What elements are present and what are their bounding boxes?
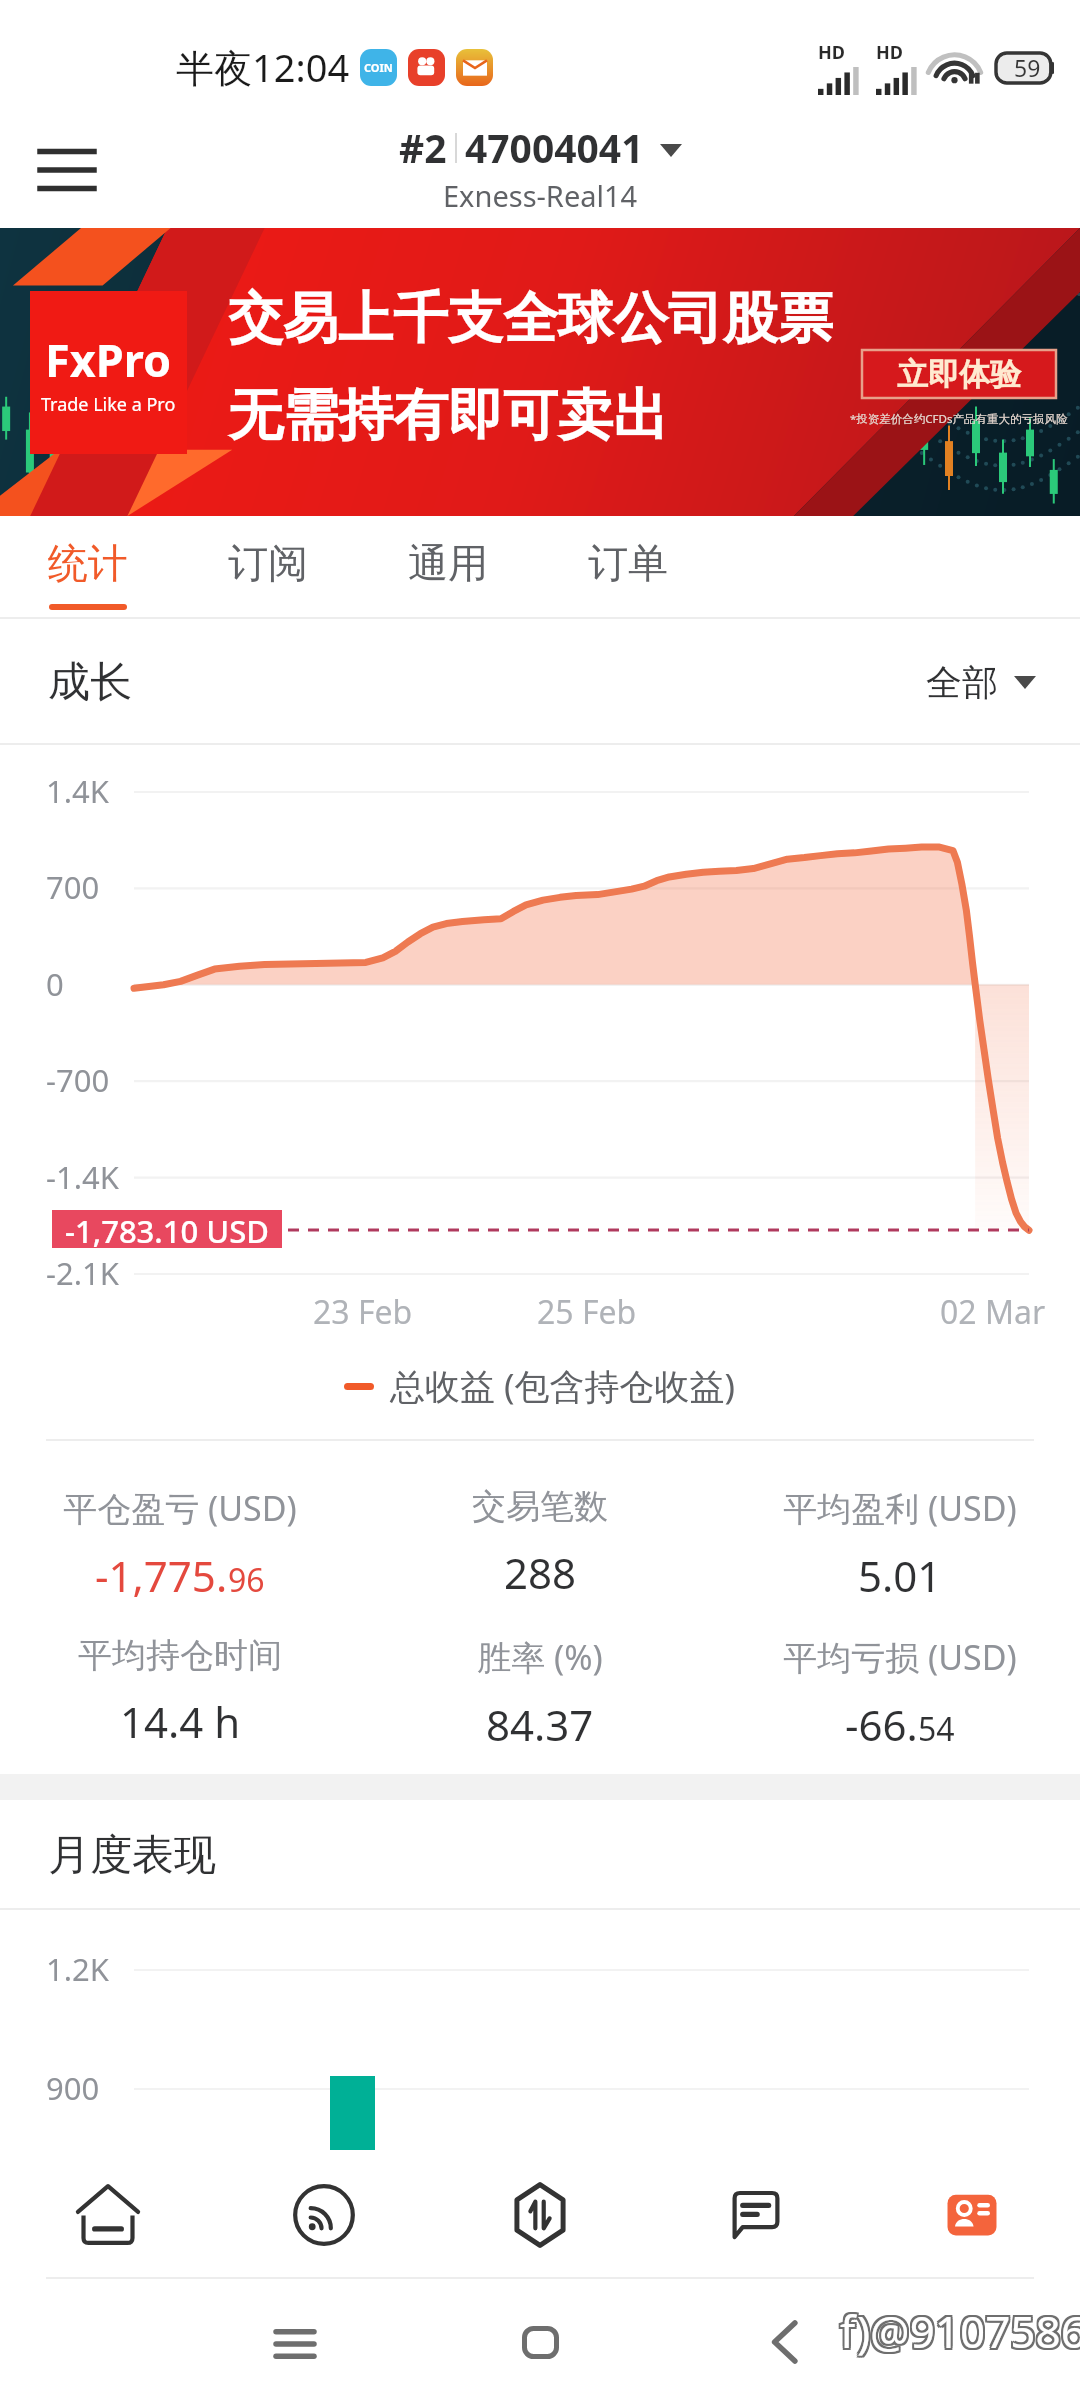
staticText: 25 Feb — [537, 1290, 637, 1334]
button[interactable]: 立即体验 — [862, 350, 1056, 398]
button[interactable]: Trade — [432, 2150, 648, 2279]
staticText: *投资差价合约CFDs产品有重大的亏损风险 — [850, 411, 1068, 427]
button[interactable]: FxPro advertisement banner — [0, 228, 1080, 516]
button[interactable]: 订阅 — [228, 516, 408, 619]
staticText: HD — [876, 40, 903, 65]
staticText: 总收益 (包含持仓收益) — [390, 1362, 736, 1410]
button[interactable]: Feed — [216, 2150, 432, 2279]
staticText: f)@9107586 — [838, 2301, 1080, 2361]
staticText: f)@9107586 — [842, 2301, 1080, 2361]
staticText: 59 — [1014, 52, 1041, 83]
staticText: f)@9107586 — [840, 2303, 1080, 2363]
staticText: 1.4K — [46, 770, 109, 812]
staticText: #2 — [399, 121, 447, 174]
button[interactable]: Home — [0, 2150, 216, 2279]
staticText: 无需持有即可卖出 — [228, 381, 668, 450]
staticText: 47004041 — [465, 121, 644, 174]
staticText: -66. — [845, 1696, 918, 1753]
staticText: Trade Like a Pro — [41, 392, 176, 417]
staticText: 统计 — [48, 538, 128, 588]
staticText: 月度表现 — [48, 1829, 216, 1882]
button[interactable]: Chat — [648, 2150, 864, 2279]
staticText: -1.4K — [46, 1156, 119, 1198]
button[interactable]: Back — [750, 2307, 820, 2377]
staticText: -1,783.10 USD — [65, 1210, 269, 1248]
staticText: 半夜12:04 — [176, 41, 350, 93]
staticText: 23 Feb — [313, 1290, 413, 1334]
staticText: 0 — [46, 963, 64, 1005]
staticText: f)@9107586 — [842, 2299, 1080, 2359]
staticText: 订阅 — [228, 538, 308, 588]
staticText: 1.2K — [46, 1948, 109, 1990]
staticText: f)@9107586 — [838, 2299, 1080, 2359]
staticText: 288 — [504, 1544, 577, 1601]
staticText: 900 — [46, 2067, 100, 2109]
staticText: f)@9107586 — [840, 2301, 1080, 2361]
staticText: HD — [818, 40, 845, 65]
staticText: 平均盈利 (USD) — [783, 1485, 1017, 1531]
staticText: f)@9107586 — [842, 2303, 1080, 2363]
button[interactable]: 订单 — [588, 516, 768, 619]
button[interactable]: Profile — [864, 2150, 1080, 2279]
button[interactable]: Menu — [26, 129, 108, 211]
staticText: -1,775. — [95, 1547, 228, 1604]
staticText: 02 Mar — [940, 1290, 1046, 1334]
staticText: 成长 — [48, 656, 132, 709]
staticText: 交易笔数 — [472, 1485, 608, 1528]
staticText: 14.4 h — [120, 1693, 241, 1750]
staticText: 胜率 (%) — [477, 1634, 603, 1680]
staticText: f)@9107586 — [840, 2299, 1080, 2359]
staticText: 96 — [228, 1558, 265, 1602]
staticText: -700 — [46, 1059, 110, 1101]
staticText: FxPro — [45, 329, 172, 390]
staticText: 订单 — [588, 538, 668, 588]
button[interactable]: 全部 — [926, 660, 1036, 705]
staticText: 全部 — [926, 660, 998, 705]
staticText: -2.1K — [46, 1252, 119, 1294]
button[interactable]: Home — [505, 2307, 575, 2377]
staticText: 54 — [918, 1707, 955, 1751]
staticText: f)@9107586 — [840, 2301, 1080, 2361]
staticText: 5.01 — [858, 1547, 942, 1604]
staticText: 立即体验 — [897, 355, 1021, 394]
staticText: 平均持仓时间 — [78, 1634, 282, 1677]
staticText: 700 — [46, 866, 100, 908]
button[interactable]: Recents — [260, 2309, 330, 2379]
staticText: 84.37 — [486, 1696, 594, 1753]
staticText: 平均亏损 (USD) — [783, 1634, 1017, 1680]
staticText: 通用 — [408, 538, 488, 588]
button[interactable]: 通用 — [408, 516, 588, 619]
staticText: f)@9107586 — [838, 2303, 1080, 2363]
staticText: 交易上千支全球公司股票 — [228, 284, 833, 353]
button[interactable]: 统计 — [48, 516, 228, 619]
staticText: Exness-Real14 — [443, 176, 638, 215]
staticText: COIN — [364, 60, 393, 75]
staticText: 平仓盈亏 (USD) — [63, 1485, 297, 1531]
